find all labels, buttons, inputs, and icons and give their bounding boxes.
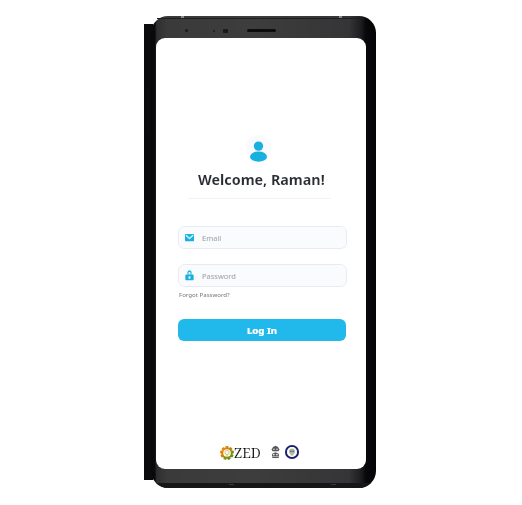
- staticText: Email: [202, 233, 222, 243]
- staticText: Welcome, Raman!: [198, 170, 325, 189]
- staticText: ZED: [234, 443, 261, 462]
- staticText: Password: [202, 271, 236, 281]
- button[interactable]: Password: [178, 264, 347, 287]
- staticText: Log In: [247, 324, 277, 337]
- button[interactable]: Email: [178, 226, 347, 249]
- button[interactable]: Forgot Password?: [178, 289, 231, 299]
- button[interactable]: Log In: [178, 319, 346, 341]
- staticText: Forgot Password?: [179, 290, 230, 298]
